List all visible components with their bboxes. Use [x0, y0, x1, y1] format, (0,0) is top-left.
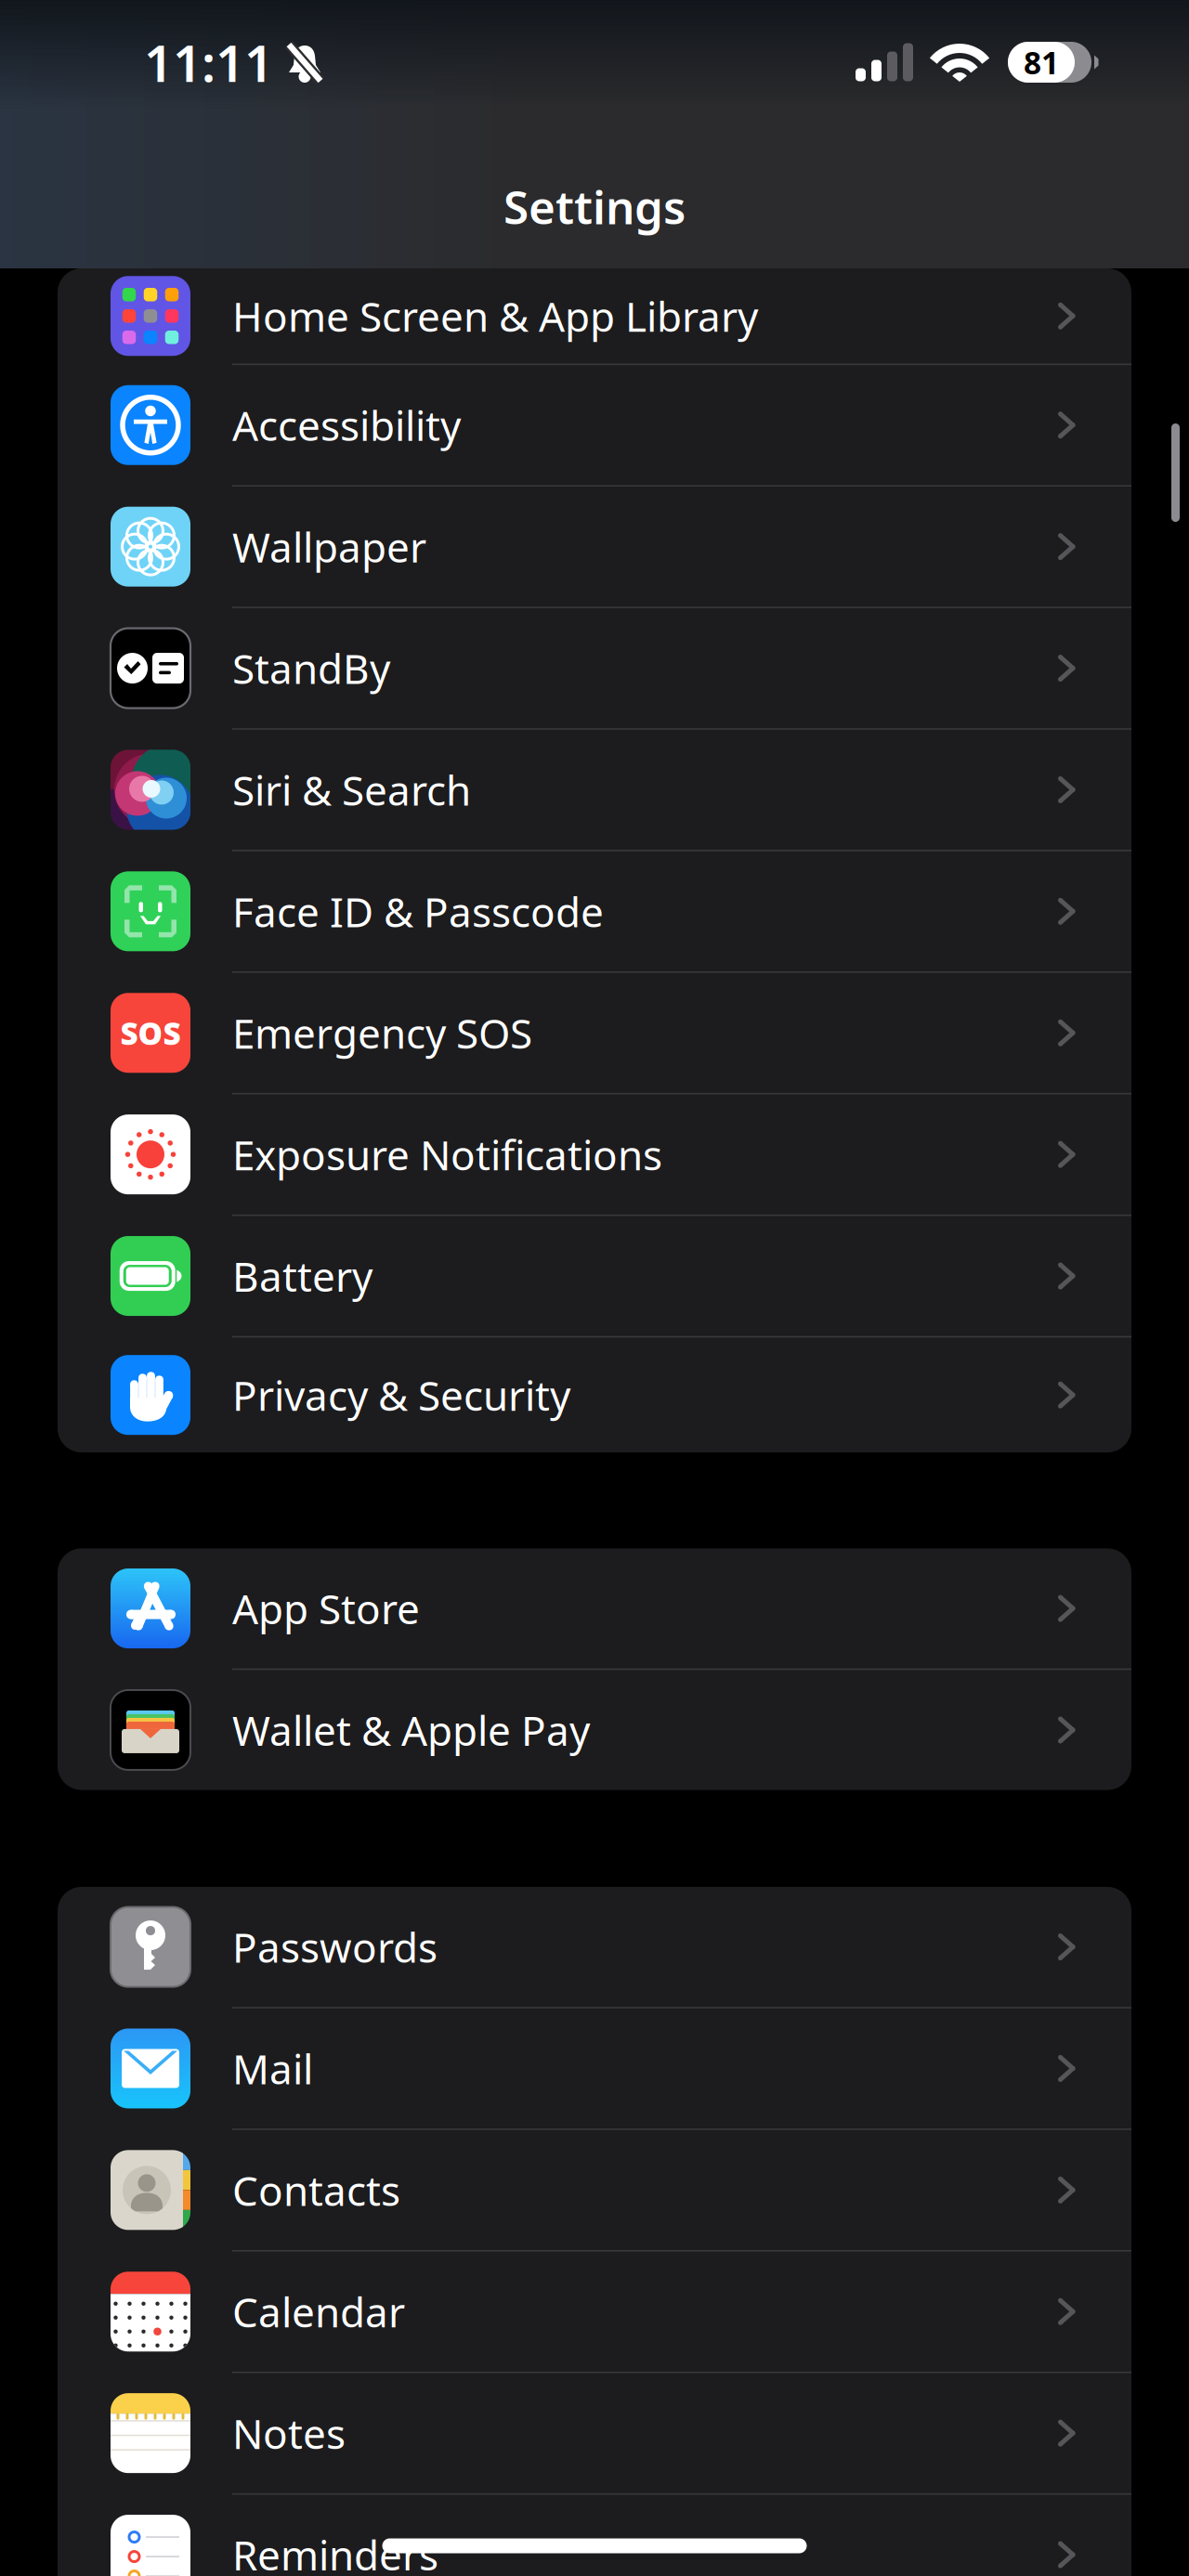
staticText: Emergency SOS: [232, 1006, 532, 1060]
staticText: Siri & Search: [232, 763, 471, 817]
staticText: Calendar: [232, 2284, 405, 2339]
button[interactable]: Home Screen & App Library: [58, 268, 1131, 365]
button[interactable]: Calendar: [58, 2252, 1131, 2373]
staticText: 81: [1024, 42, 1059, 83]
button[interactable]: Siri & Search: [58, 730, 1131, 851]
button[interactable]: StandBy: [58, 608, 1131, 730]
staticText: Passwords: [232, 1920, 438, 1974]
staticText: Notes: [232, 2406, 346, 2460]
staticText: Privacy & Security: [232, 1368, 570, 1422]
button[interactable]: Wallpaper: [58, 487, 1131, 608]
button[interactable]: Battery: [58, 1216, 1131, 1337]
button[interactable]: SOS: [58, 973, 1131, 1094]
staticText: Wallpaper: [232, 519, 426, 574]
staticText: Battery: [232, 1249, 372, 1303]
button[interactable]: Face ID & Passcode: [58, 851, 1131, 973]
staticText: SOS: [120, 1012, 181, 1053]
staticText: Home Screen & App Library: [232, 289, 758, 343]
staticText: 11:11: [144, 29, 273, 96]
staticText: Exposure Notifications: [232, 1127, 662, 1181]
button[interactable]: Contacts: [58, 2130, 1131, 2252]
staticText: Wallet & Apple Pay: [232, 1703, 590, 1757]
button[interactable]: Notes: [58, 2373, 1131, 2495]
staticText: StandBy: [232, 641, 390, 695]
staticText: Mail: [232, 2041, 313, 2096]
staticText: App Store: [232, 1581, 420, 1635]
button[interactable]: Privacy & Security: [58, 1337, 1131, 1452]
staticText: Face ID & Passcode: [232, 884, 604, 938]
staticText: Accessibility: [232, 398, 461, 452]
button[interactable]: Reminders: [58, 2495, 1131, 2576]
staticText: Settings: [503, 176, 686, 237]
button[interactable]: App Store: [58, 1548, 1131, 1670]
button[interactable]: Passwords: [58, 1887, 1131, 2008]
staticText: Contacts: [232, 2163, 400, 2217]
button[interactable]: Exposure Notifications: [58, 1094, 1131, 1216]
staticText: Reminders: [232, 2528, 438, 2576]
button[interactable]: Accessibility: [58, 365, 1131, 487]
button[interactable]: Wallet & Apple Pay: [58, 1670, 1131, 1790]
button[interactable]: Mail: [58, 2008, 1131, 2130]
